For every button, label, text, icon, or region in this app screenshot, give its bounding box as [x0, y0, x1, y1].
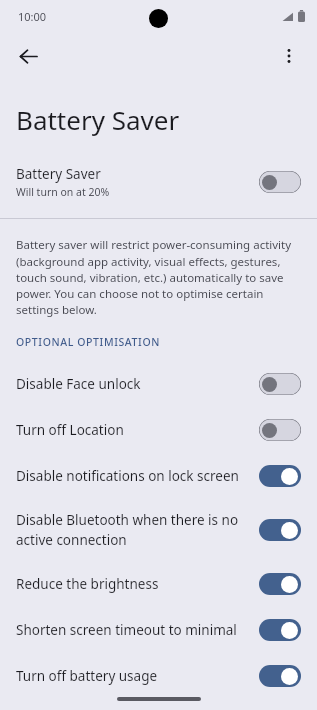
button[interactable] [259, 465, 301, 487]
staticText: Reduce the brightness [16, 575, 245, 593]
button[interactable]: Turn off Location [0, 407, 317, 453]
staticText: Will turn on at 20% [16, 185, 110, 199]
staticText: Turn off Location [16, 421, 245, 439]
staticText: Disable Face unlock [16, 375, 245, 393]
staticText: Battery Saver [16, 165, 101, 183]
button[interactable] [259, 519, 301, 541]
staticText: OPTIONAL OPTIMISATION [16, 335, 160, 349]
button[interactable] [259, 373, 301, 395]
staticText: Disable Bluetooth when there is no activ… [16, 511, 245, 549]
button[interactable]: Disable Bluetooth when there is no activ… [0, 499, 317, 561]
staticText: Turn off battery usage [16, 667, 245, 685]
button[interactable]: Reduce the brightness [0, 561, 317, 607]
staticText: Disable notifications on lock screen [16, 467, 245, 485]
button[interactable] [259, 171, 301, 193]
staticText: Battery saver will restrict power-consum… [16, 237, 301, 317]
button[interactable]: Battery Saver [0, 165, 317, 199]
button[interactable]: More options [267, 34, 311, 78]
button[interactable]: Disable notifications on lock screen [0, 453, 317, 499]
button[interactable]: Disable Face unlock [0, 361, 317, 407]
button[interactable] [259, 419, 301, 441]
button[interactable]: Turn off battery usage [0, 653, 317, 699]
button[interactable] [259, 619, 301, 641]
staticText: 10:00 [18, 9, 47, 24]
staticText: Shorten screen timeout to minimal [16, 621, 245, 639]
button[interactable] [259, 573, 301, 595]
button[interactable] [259, 665, 301, 687]
button[interactable]: Shorten screen timeout to minimal [0, 607, 317, 653]
staticText: Battery Saver [16, 102, 180, 137]
button[interactable]: Back [6, 34, 50, 78]
